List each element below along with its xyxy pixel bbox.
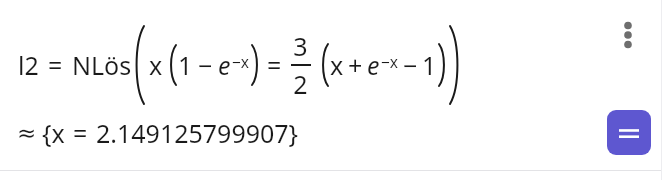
- staticText: ≈: [17, 120, 37, 147]
- staticText: e: [218, 48, 231, 82]
- button[interactable]: Evaluate, equals: [607, 110, 651, 155]
- staticText: x: [330, 48, 344, 82]
- staticText: 2: [293, 67, 308, 101]
- staticText: 1: [178, 48, 193, 82]
- staticText: NLös: [72, 48, 132, 82]
- staticText: −: [403, 48, 418, 82]
- staticText: =: [48, 48, 63, 82]
- staticText: {x: [42, 116, 65, 150]
- staticText: x: [149, 48, 163, 82]
- staticText: =: [267, 48, 282, 82]
- staticText: −: [198, 48, 213, 82]
- staticText: +: [348, 48, 363, 82]
- staticText: e: [367, 48, 380, 82]
- button[interactable]: l2: [18, 26, 462, 104]
- staticText: 2.149125799907}: [96, 116, 299, 150]
- staticText: −x: [232, 51, 250, 72]
- staticText: l2: [18, 48, 39, 82]
- staticText: 1: [422, 48, 437, 82]
- staticText: =: [73, 116, 88, 150]
- button[interactable]: ≈: [17, 116, 299, 150]
- button[interactable]: More options: [608, 15, 648, 55]
- staticText: 3: [293, 29, 308, 63]
- staticText: −x: [381, 51, 399, 72]
